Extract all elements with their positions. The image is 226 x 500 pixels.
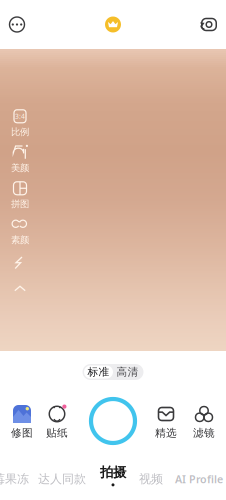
button[interactable]: 修图 bbox=[0, 402, 44, 440]
staticText: 拼图 bbox=[11, 198, 29, 210]
button[interactable]: 标准 bbox=[84, 365, 113, 378]
button[interactable]: 高清 bbox=[113, 365, 142, 378]
staticText: 视频 bbox=[139, 472, 163, 486]
button[interactable]: 视频 bbox=[137, 464, 165, 494]
button[interactable]: More options bbox=[6, 13, 28, 35]
staticText: 滤镜 bbox=[193, 426, 215, 439]
staticText: 修图 bbox=[11, 426, 33, 439]
staticText: 莓果冻 bbox=[0, 472, 29, 486]
button[interactable]: Flip camera bbox=[198, 13, 220, 35]
staticText: 贴纸 bbox=[46, 426, 68, 439]
button[interactable]: 滤镜 bbox=[182, 402, 226, 440]
staticText: 高清 bbox=[116, 365, 138, 378]
button[interactable]: 精选 bbox=[156, 402, 176, 440]
button[interactable]: 3:4 bbox=[3, 109, 37, 137]
staticText: 素颜 bbox=[11, 234, 29, 246]
button[interactable]: 美颜 bbox=[3, 145, 37, 173]
button[interactable]: 拍摄 bbox=[98, 464, 128, 494]
staticText: 标准 bbox=[87, 365, 109, 378]
staticText: 比例 bbox=[11, 126, 29, 138]
button[interactable]: AI Profile bbox=[173, 464, 225, 494]
button[interactable]: 达人同款 bbox=[36, 464, 88, 494]
button[interactable]: 贴纸 bbox=[44, 402, 70, 440]
button[interactable]: 莓果冻 bbox=[0, 464, 29, 494]
staticText: 美颜 bbox=[11, 162, 29, 174]
staticText: 拍摄 bbox=[100, 464, 126, 480]
button[interactable]: 拼图 bbox=[3, 181, 37, 209]
button[interactable]: Flash bbox=[3, 253, 37, 273]
button[interactable]: Collapse tools bbox=[3, 281, 37, 297]
staticText: 3:4 bbox=[15, 112, 25, 121]
button[interactable]: 素颜 bbox=[3, 217, 37, 245]
staticText: 精选 bbox=[155, 426, 177, 439]
button[interactable]: VIP bbox=[102, 13, 124, 35]
staticText: AI Profile bbox=[175, 472, 223, 486]
button[interactable]: Shutter bbox=[70, 394, 156, 448]
staticText: 达人同款 bbox=[38, 472, 86, 486]
